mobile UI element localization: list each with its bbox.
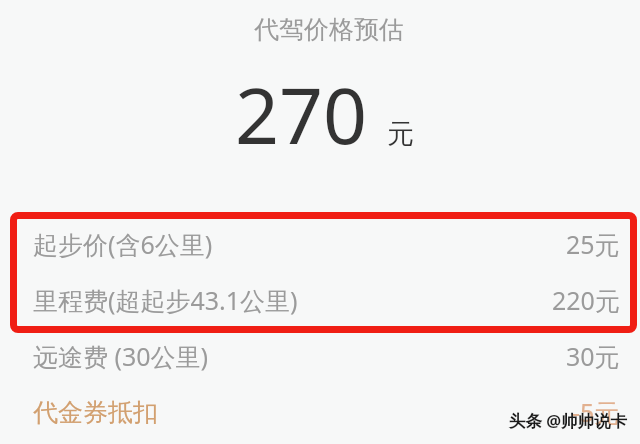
staticText: 头条 @帅帅说卡	[509, 409, 628, 432]
staticText: 25元	[566, 227, 620, 261]
staticText: 远途费 (30公里)	[33, 339, 209, 373]
button[interactable]: 起步价(含6公里)	[0, 216, 640, 272]
staticText: 起步价(含6公里)	[33, 227, 213, 261]
button[interactable]: 里程费(超起步43.1公里)	[0, 272, 640, 328]
button[interactable]: 远途费 (30公里)	[0, 328, 640, 384]
staticText: 代驾价格预估	[254, 14, 404, 45]
staticText: 270	[235, 62, 368, 167]
button[interactable]: 代金券抵扣	[0, 384, 640, 440]
staticText: 里程费(超起步43.1公里)	[33, 283, 298, 317]
staticText: 元	[387, 117, 414, 151]
staticText: 30元	[566, 339, 620, 373]
staticText: 代金券抵扣	[33, 397, 158, 428]
staticText: 220元	[552, 283, 620, 317]
staticText: -5元	[572, 395, 620, 429]
